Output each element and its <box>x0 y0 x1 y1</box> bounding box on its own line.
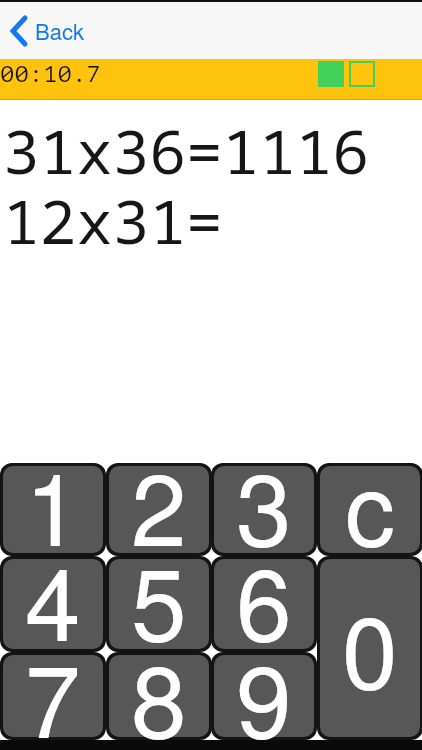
button[interactable]: 8 <box>106 652 212 740</box>
staticText: 3 <box>236 431 292 574</box>
button[interactable]: 6 <box>211 556 317 652</box>
staticText: 1 <box>25 431 81 574</box>
staticText: Back <box>35 15 85 47</box>
staticText: c <box>345 431 395 574</box>
button[interactable]: 3 <box>211 463 317 556</box>
staticText: 00:10.7 <box>0 61 101 88</box>
staticText: 4 <box>25 526 81 669</box>
staticText: 9 <box>236 623 292 750</box>
staticText: 6 <box>236 526 292 669</box>
button[interactable]: 7 <box>0 652 106 740</box>
staticText: 8 <box>131 623 187 750</box>
button[interactable]: 9 <box>211 652 317 740</box>
button[interactable]: 1 <box>0 463 106 556</box>
button[interactable]: 0 <box>317 556 422 740</box>
button[interactable]: 5 <box>106 556 212 652</box>
button[interactable]: Back <box>10 15 85 47</box>
staticText: 31x36=1116 <box>3 109 370 192</box>
staticText: 0 <box>342 574 398 717</box>
button[interactable]: 2 <box>106 463 212 556</box>
button[interactable]: 4 <box>0 556 106 652</box>
staticText: 5 <box>131 526 187 669</box>
staticText: 12x31= <box>3 179 223 262</box>
staticText: 7 <box>25 623 81 750</box>
button[interactable]: c <box>317 463 422 556</box>
staticText: 2 <box>131 431 187 574</box>
